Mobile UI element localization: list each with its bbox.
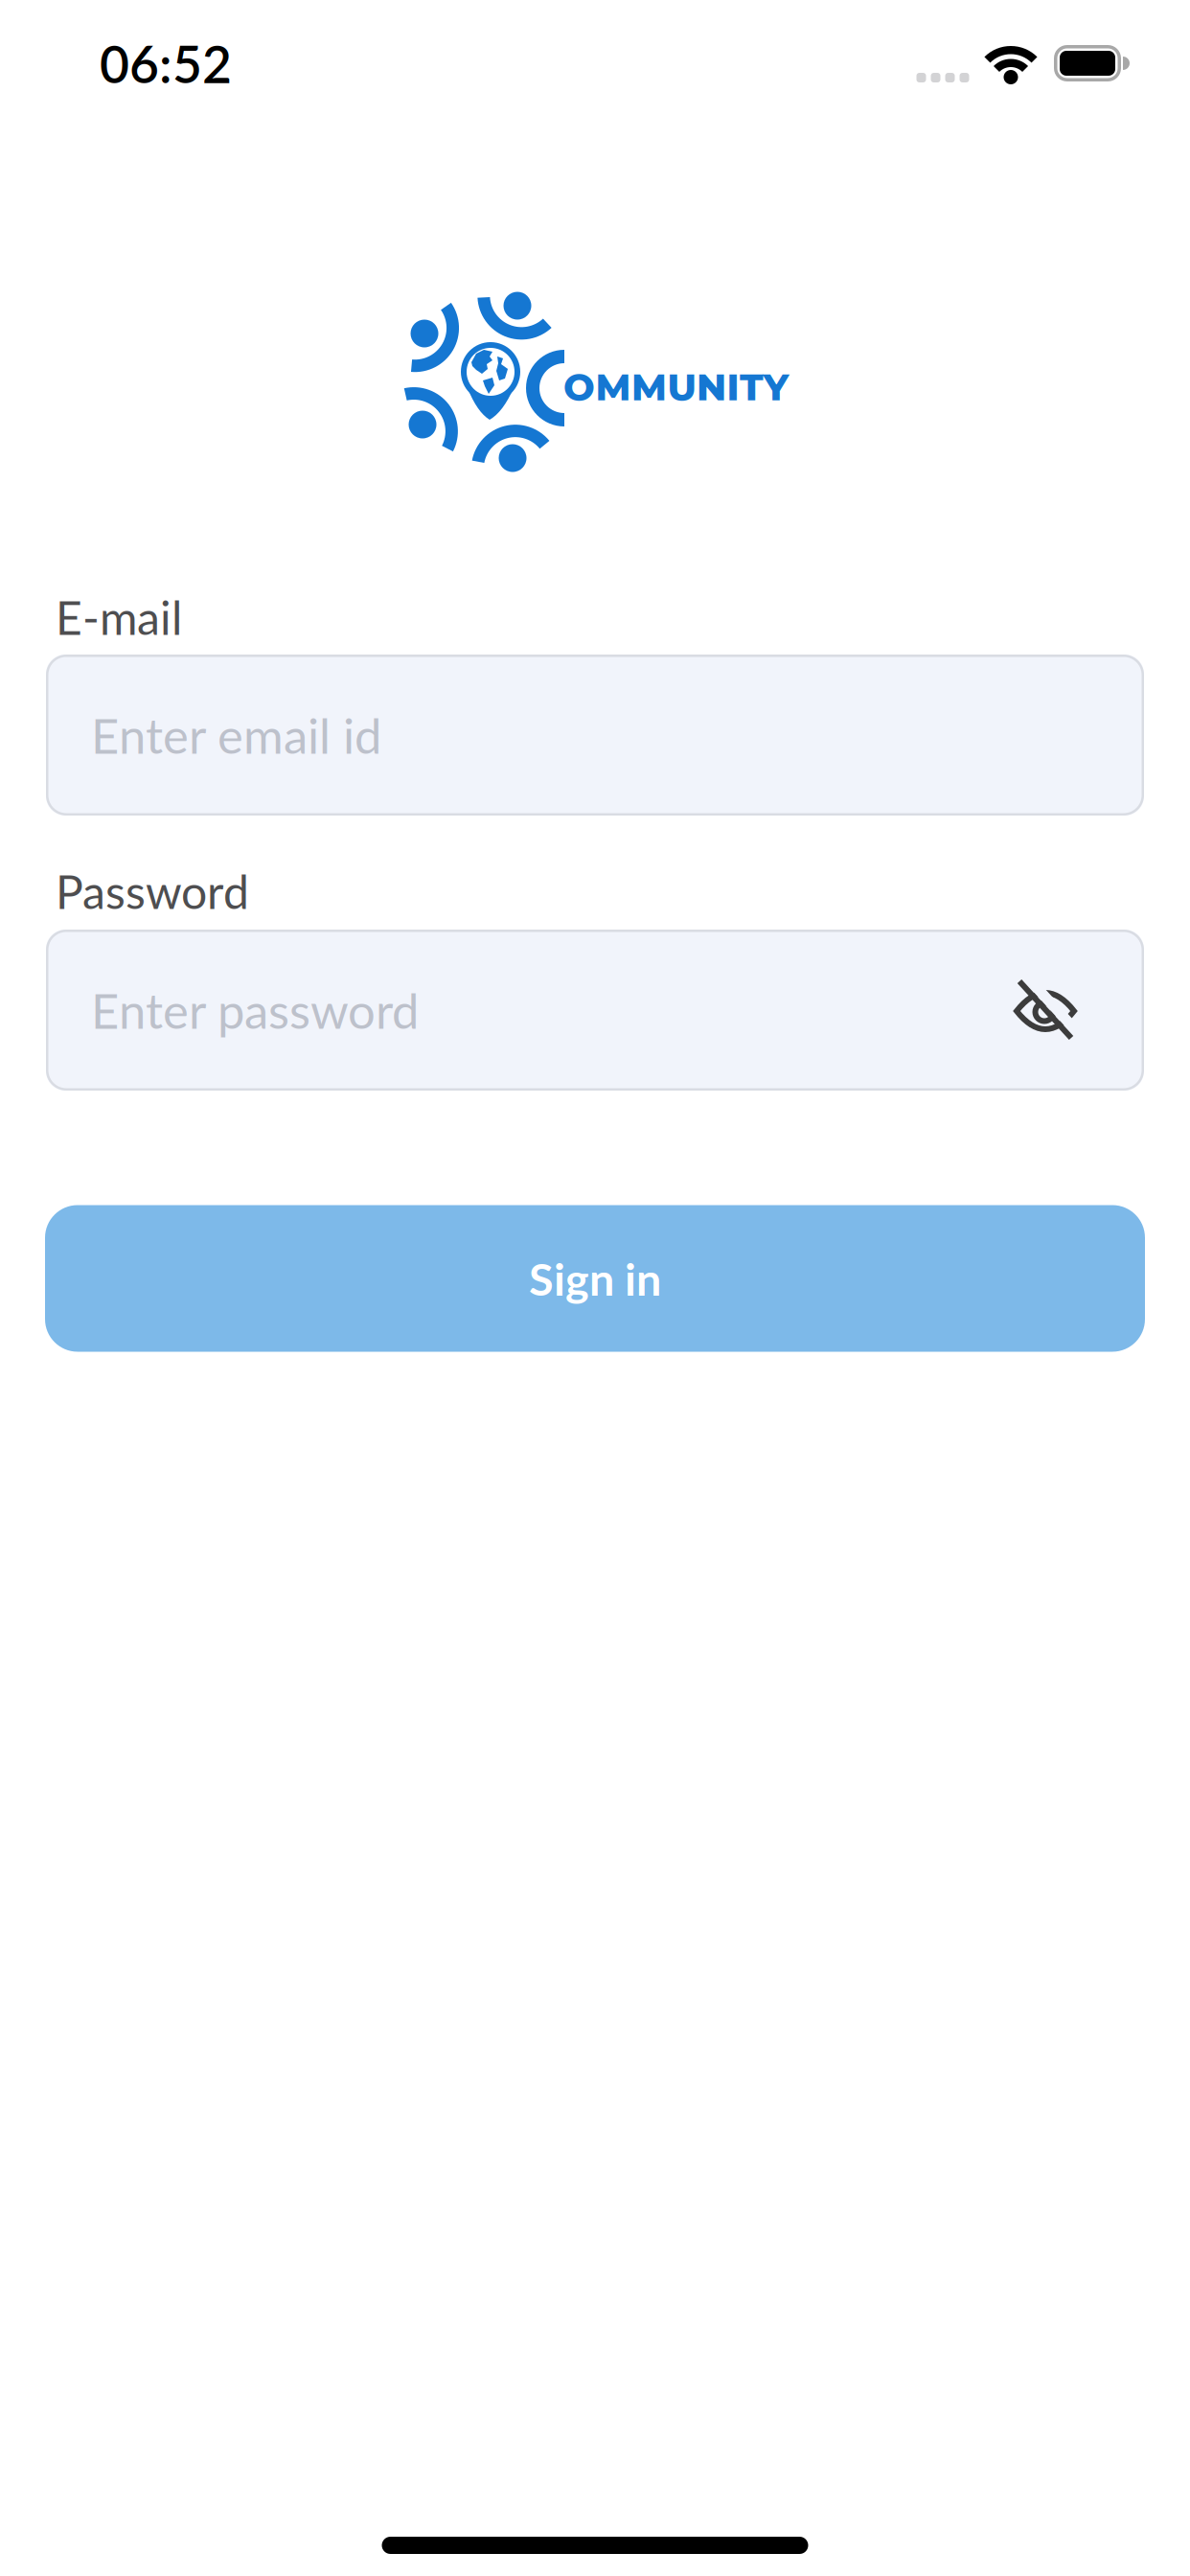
staticText: E-mail: [56, 590, 182, 644]
staticText: Enter email id: [91, 707, 381, 764]
staticText: Password: [56, 864, 249, 918]
staticText: Enter password: [91, 982, 419, 1039]
button[interactable]: Password, text field: [46, 930, 1144, 1091]
staticText: 06:52: [100, 33, 232, 93]
button[interactable]: Show password: [1002, 968, 1088, 1054]
button[interactable]: E-mail, text field: [46, 655, 1144, 816]
button[interactable]: Sign in: [45, 1205, 1145, 1352]
staticText: OMMUNITY: [563, 365, 789, 410]
staticText: Sign in: [529, 1252, 661, 1305]
